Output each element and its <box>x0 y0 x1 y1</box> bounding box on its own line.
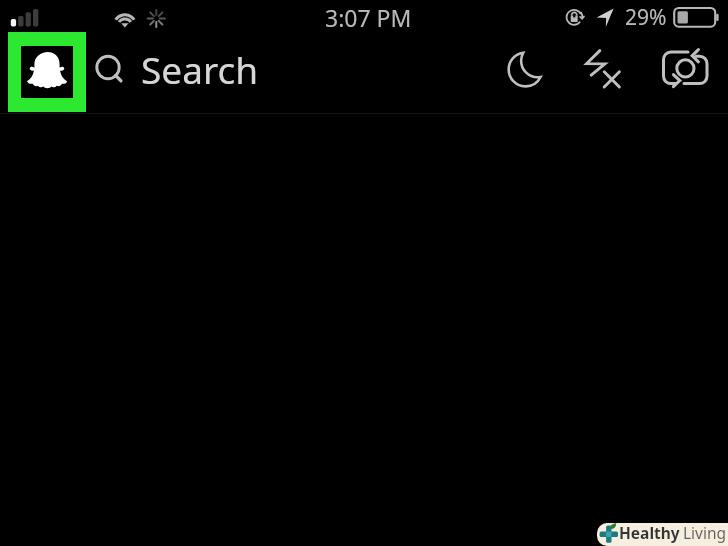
button[interactable]: Profile <box>8 32 86 112</box>
button[interactable]: Night mode <box>498 42 552 96</box>
staticText: 3:07 PM <box>325 2 412 33</box>
staticText: Healthy <box>619 523 680 543</box>
button[interactable]: Flip camera <box>658 44 712 92</box>
button[interactable]: Flash off <box>582 45 626 91</box>
button[interactable]: Search <box>90 44 270 92</box>
staticText: Search <box>141 44 259 92</box>
staticText: 29% <box>625 3 667 32</box>
staticText: Living <box>683 523 727 543</box>
